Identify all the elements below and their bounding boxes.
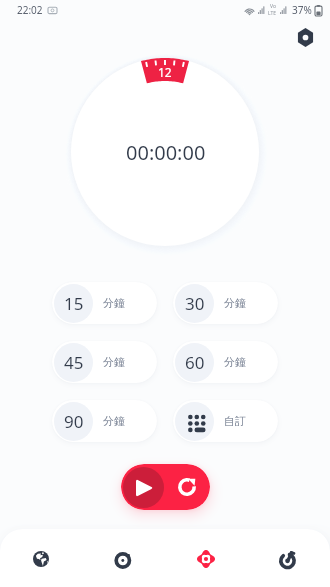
staticText: 15 <box>64 292 84 315</box>
button[interactable]: Alarm <box>82 533 164 585</box>
button[interactable]: 15 <box>52 282 157 324</box>
staticText: 22:02 <box>17 3 43 17</box>
button[interactable]: Start <box>123 467 164 508</box>
staticText: 12 <box>158 64 172 80</box>
staticText: Vo <box>270 3 276 10</box>
staticText: 37% <box>292 3 312 17</box>
staticText: 分鐘 <box>103 296 125 310</box>
button[interactable]: 90 <box>52 400 157 442</box>
staticText: LTE <box>268 10 277 17</box>
button[interactable]: 45 <box>52 341 157 383</box>
button[interactable]: 30 <box>173 282 278 324</box>
button[interactable]: Reset <box>164 464 210 510</box>
button[interactable]: Timer <box>164 533 247 585</box>
button[interactable]: World clock <box>0 533 82 585</box>
staticText: 分鐘 <box>224 296 246 310</box>
staticText: 60 <box>185 351 205 374</box>
button[interactable]: 60 <box>173 341 278 383</box>
staticText: 分鐘 <box>103 414 125 428</box>
staticText: 自訂 <box>224 414 246 428</box>
staticText: 00:00:00 <box>126 139 206 166</box>
staticText: 45 <box>64 351 84 374</box>
button[interactable]: Settings <box>291 23 319 51</box>
button[interactable]: Stopwatch <box>247 533 330 585</box>
staticText: 分鐘 <box>224 355 246 369</box>
button[interactable]: 自訂 <box>173 400 278 442</box>
staticText: 30 <box>185 292 205 315</box>
staticText: 90 <box>64 410 84 433</box>
staticText: 分鐘 <box>103 355 125 369</box>
